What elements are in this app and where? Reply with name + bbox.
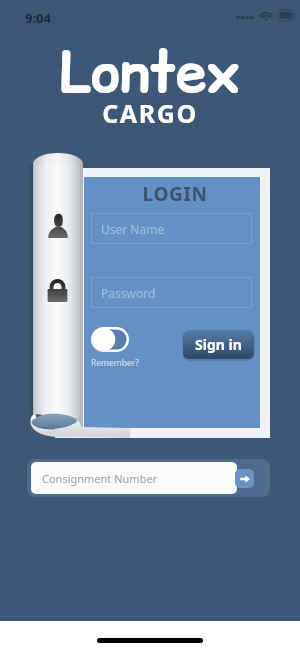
staticText: Remember?	[91, 357, 139, 369]
button[interactable]: Track consignment	[235, 469, 254, 488]
button[interactable]: User Name	[91, 213, 252, 244]
staticText: Lontex	[0, 33, 300, 111]
staticText: Password	[101, 285, 156, 301]
button[interactable]: Remember me toggle	[91, 327, 129, 352]
button[interactable]: Sign in	[183, 330, 254, 359]
staticText: User Name	[101, 221, 165, 237]
staticText: Consignment Number	[42, 471, 158, 486]
staticText: LOGIN	[87, 181, 263, 207]
button[interactable]: Password	[91, 277, 252, 308]
button[interactable]: Consignment Number	[31, 462, 237, 494]
staticText: CARGO	[0, 96, 300, 130]
staticText: Sign in	[195, 335, 242, 354]
staticText: 9:04	[25, 9, 51, 27]
